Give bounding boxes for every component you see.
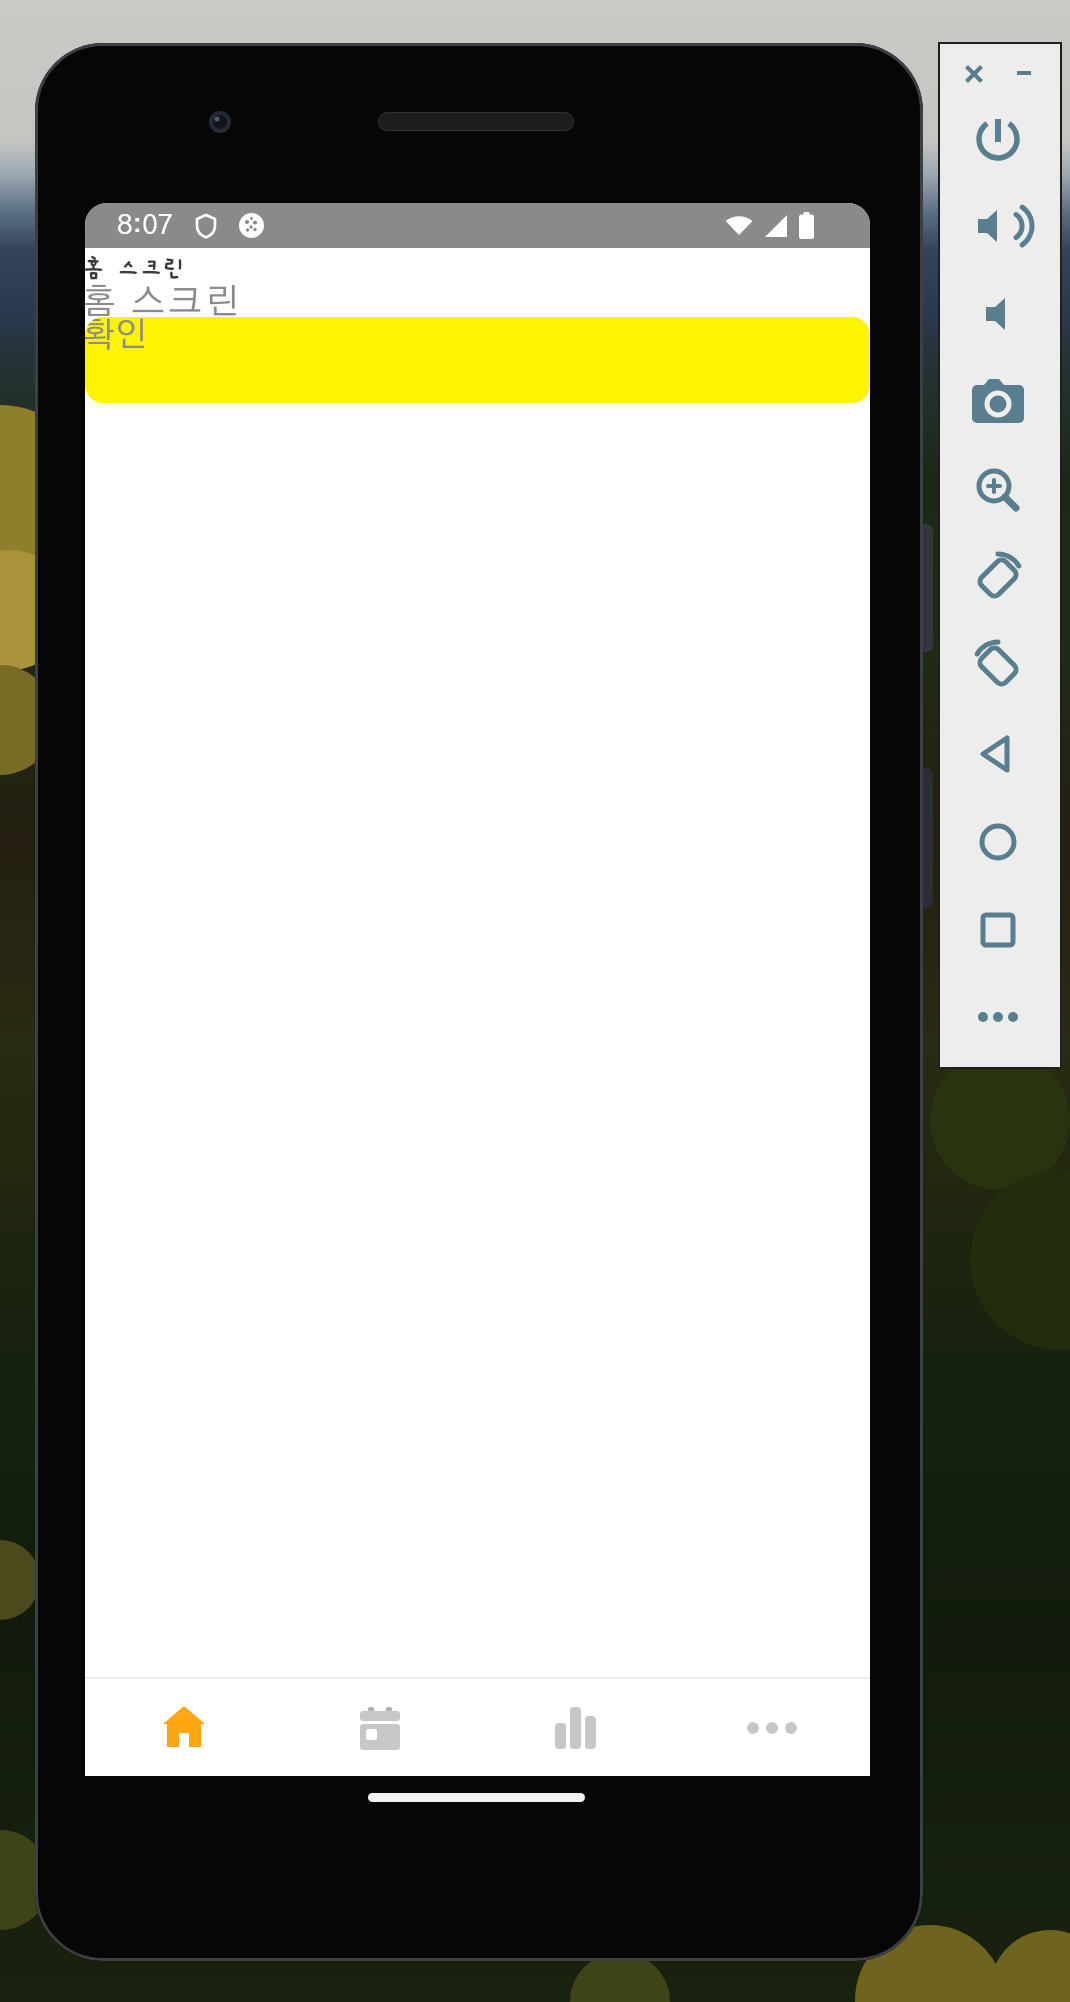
button[interactable]	[938, 711, 1062, 798]
staticText: 홈 스크린	[85, 256, 186, 284]
button[interactable]	[938, 276, 1062, 363]
button[interactable]	[938, 450, 1062, 537]
staticText: 홈 스크린	[85, 285, 243, 320]
button[interactable]: 확인	[85, 317, 870, 403]
button[interactable]	[938, 972, 1062, 1059]
button[interactable]	[282, 1679, 478, 1776]
button[interactable]	[478, 1679, 674, 1776]
button[interactable]	[938, 798, 1062, 885]
button[interactable]: 홈 스크린	[85, 248, 870, 281]
button[interactable]	[85, 1679, 282, 1776]
staticText: 확인	[85, 319, 148, 353]
button[interactable]	[938, 102, 1062, 189]
button[interactable]	[938, 624, 1062, 711]
button[interactable]	[938, 189, 1062, 276]
button[interactable]	[938, 885, 1062, 972]
staticText: 8:07	[117, 212, 174, 240]
button[interactable]	[938, 363, 1062, 450]
button[interactable]	[674, 1679, 870, 1776]
button[interactable]	[938, 537, 1062, 624]
